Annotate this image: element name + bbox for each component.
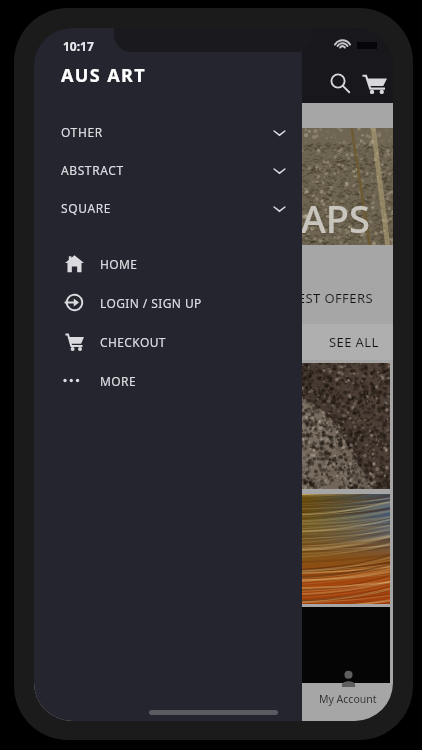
button[interactable]: My Account — [303, 683, 393, 721]
button[interactable]: CHECKOUT — [34, 321, 302, 360]
button[interactable]: MORE — [34, 360, 302, 399]
button[interactable]: Wishlist — [213, 683, 303, 721]
button[interactable]: OTHER — [34, 113, 302, 151]
staticText: My Account — [319, 692, 377, 706]
staticText: OTHER — [61, 124, 103, 140]
button[interactable]: Home — [34, 683, 123, 721]
button[interactable]: HOME — [34, 243, 302, 282]
button[interactable]: ABSTRACT — [34, 151, 302, 189]
staticText: MORE — [100, 373, 136, 389]
button[interactable] — [37, 363, 390, 489]
staticText: BEST OFFERS — [289, 289, 373, 307]
staticText: CHECKOUT — [100, 334, 166, 350]
button[interactable]: SEE ALL — [34, 324, 393, 360]
button[interactable] — [37, 607, 390, 683]
button[interactable]: Search — [323, 66, 357, 100]
button[interactable]: Shopping cart — [357, 66, 391, 100]
staticText: MAPS — [266, 192, 370, 244]
staticText: AUS ART — [61, 63, 147, 88]
button[interactable]: Store — [123, 683, 213, 721]
staticText: SQUARE — [61, 200, 112, 216]
button[interactable] — [37, 494, 390, 604]
button[interactable]: LOGIN / SIGN UP — [34, 282, 302, 321]
staticText: ABSTRACT — [61, 162, 124, 178]
button[interactable]: SQUARE — [34, 189, 302, 227]
staticText: LOGIN / SIGN UP — [100, 295, 202, 311]
staticText: 10:17 — [63, 38, 94, 54]
staticText: SEE ALL — [329, 333, 379, 351]
staticText: HOME — [100, 256, 138, 272]
